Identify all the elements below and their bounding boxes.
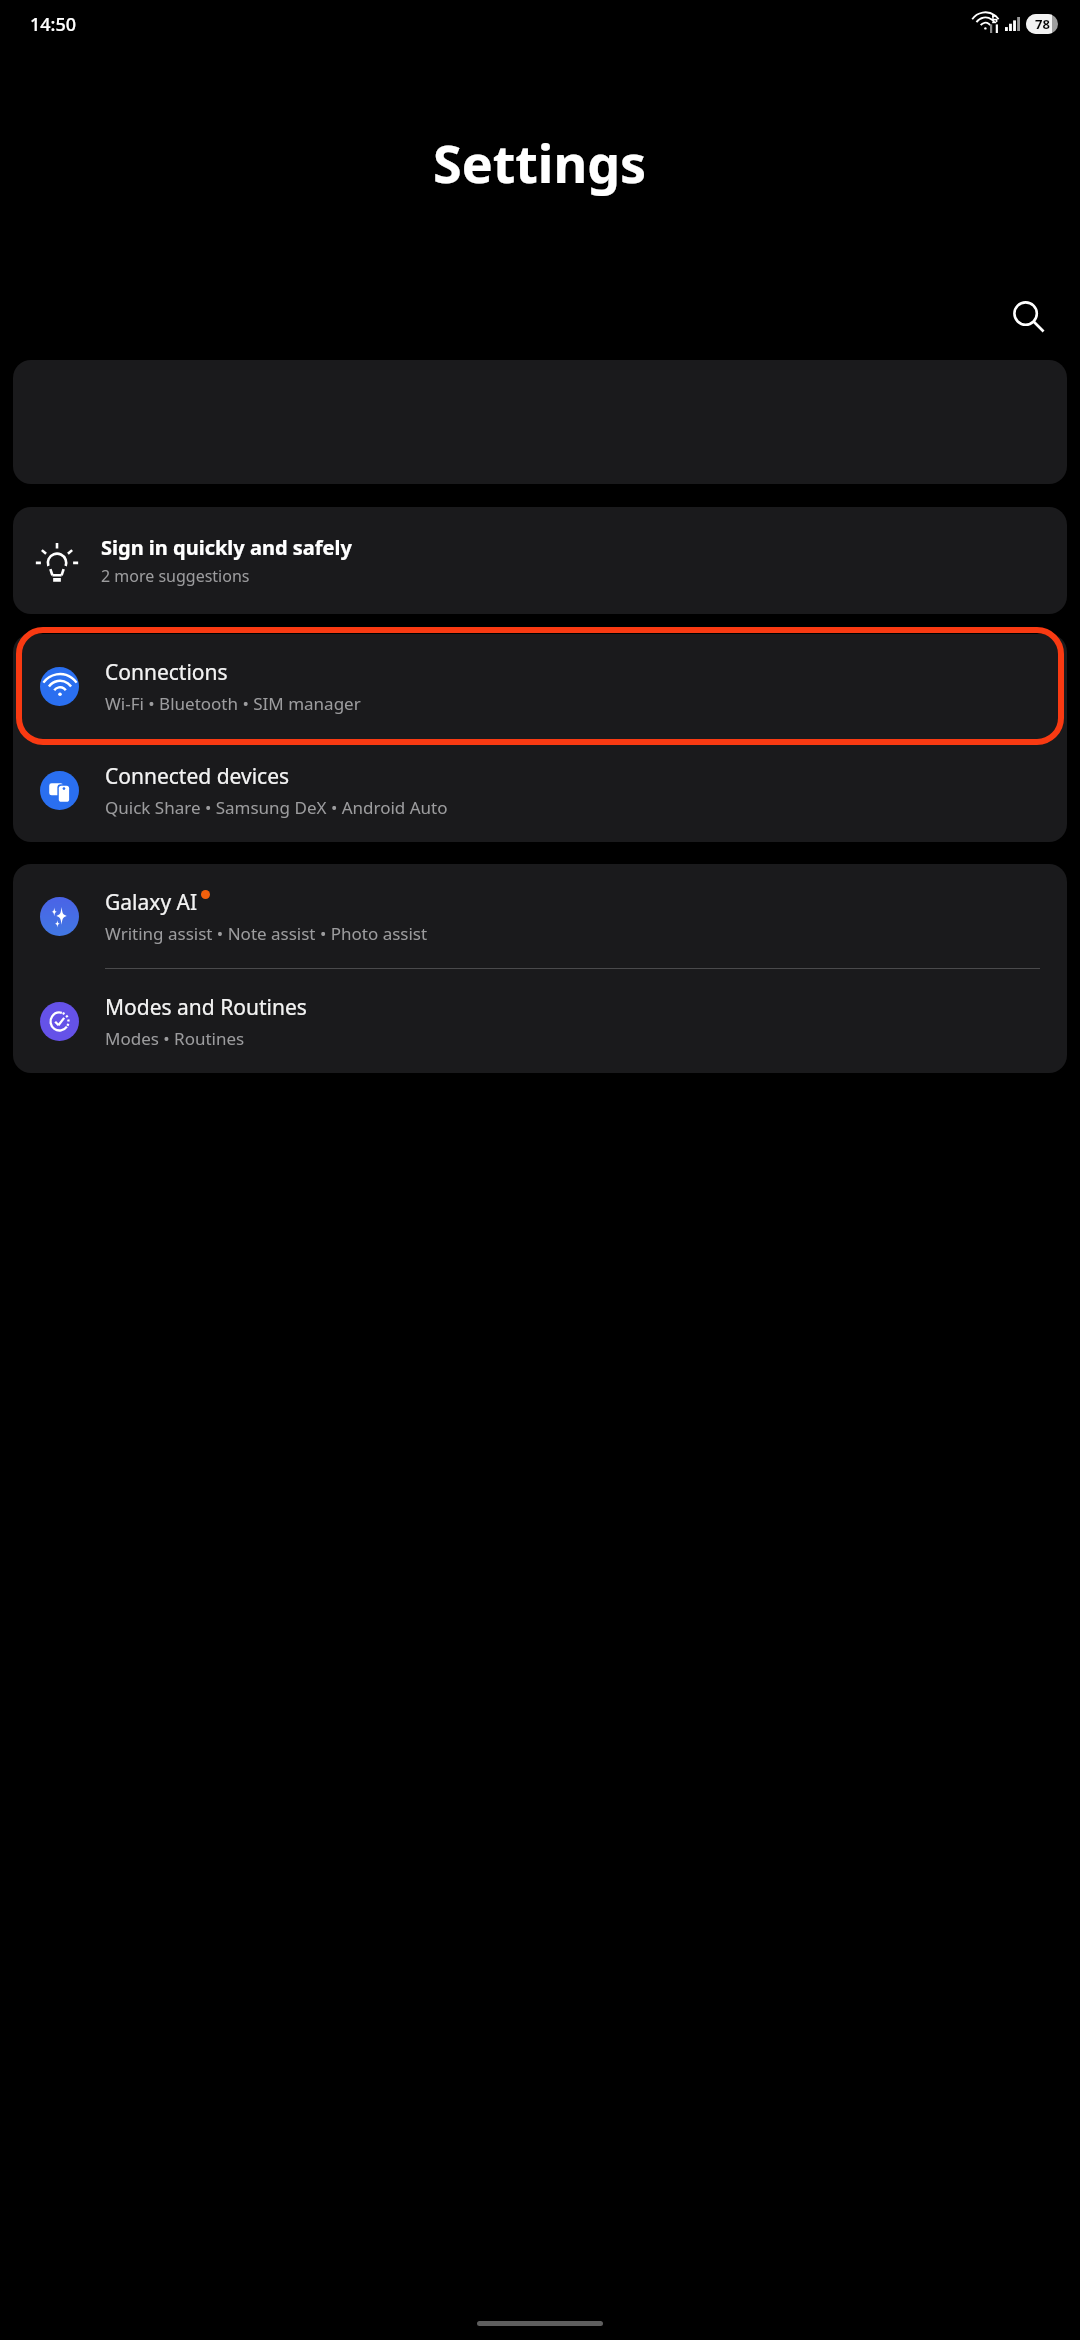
- button[interactable]: Search settings: [1000, 289, 1056, 345]
- button[interactable]: Sign in quickly and safely: [13, 507, 1067, 614]
- button[interactable]: Galaxy AI: [13, 864, 1067, 968]
- staticText: Modes • Routines: [105, 1027, 245, 1050]
- staticText: Modes and Routines: [105, 993, 307, 1022]
- staticText: Connections: [105, 658, 228, 687]
- button[interactable]: Modes and Routines: [13, 969, 1067, 1073]
- staticText: Settings: [433, 127, 647, 198]
- staticText: Sign in quickly and safely: [101, 534, 352, 561]
- staticText: 14:50: [30, 12, 77, 37]
- staticText: Connected devices: [105, 762, 290, 791]
- staticText: Wi-Fi • Bluetooth • SIM manager: [105, 692, 361, 715]
- staticText: Galaxy AI: [105, 888, 198, 917]
- staticText: 2 more suggestions: [101, 565, 250, 587]
- staticText: 78: [1035, 15, 1050, 33]
- button[interactable]: Connected devices: [13, 738, 1067, 842]
- staticText: Quick Share • Samsung DeX • Android Auto: [105, 796, 448, 819]
- button[interactable]: Connections: [13, 634, 1067, 738]
- staticText: Writing assist • Note assist • Photo ass…: [105, 922, 428, 945]
